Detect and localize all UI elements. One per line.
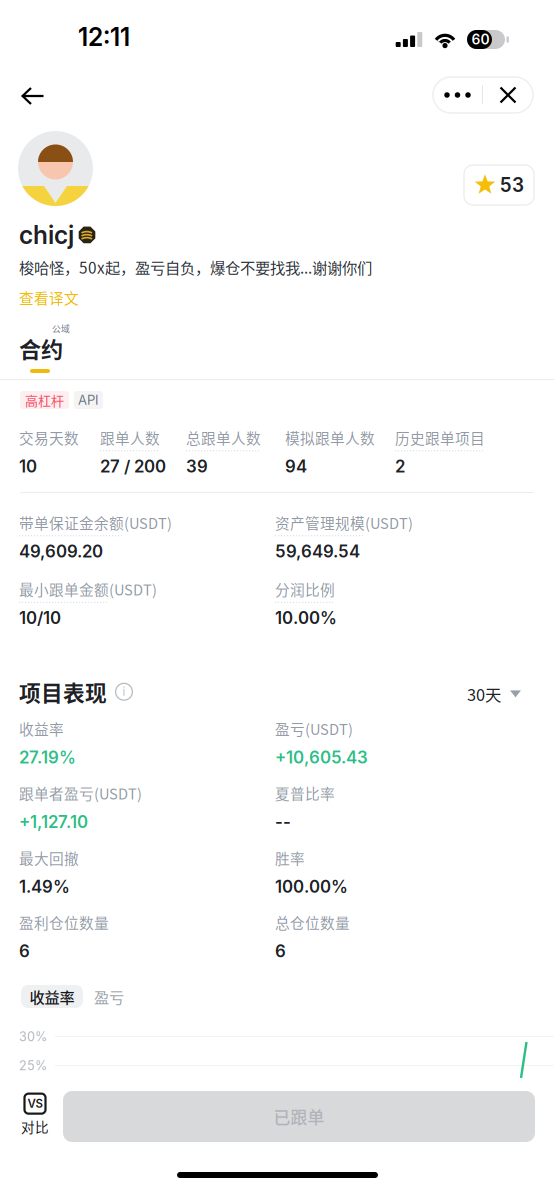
button[interactable]: Back bbox=[6, 74, 60, 118]
staticText: 收益率 bbox=[19, 718, 64, 739]
button[interactable]: 已跟单 bbox=[63, 1091, 535, 1142]
button[interactable]: More bbox=[433, 77, 482, 113]
staticText: 12:11 bbox=[78, 22, 130, 52]
staticText: 最小跟单金额(USDT) bbox=[19, 579, 157, 600]
staticText: 梭哈怪，50x起，盈亏自负，爆仓不要找我...谢谢你们 bbox=[19, 256, 372, 278]
staticText: 历史跟单项目 bbox=[395, 427, 485, 448]
staticText: 10/10 bbox=[19, 608, 61, 628]
staticText: 已跟单 bbox=[273, 1104, 324, 1129]
staticText: 收益率 bbox=[29, 985, 74, 1007]
staticText: 对比 bbox=[21, 1117, 49, 1136]
staticText: +1,127.10 bbox=[19, 812, 88, 832]
staticText: 30% bbox=[19, 1029, 47, 1044]
staticText: 10 bbox=[19, 456, 37, 476]
staticText: i bbox=[122, 685, 125, 699]
staticText: 27.19% bbox=[19, 747, 76, 767]
staticText: 59,649.54 bbox=[275, 541, 360, 561]
staticText: 1.49% bbox=[19, 876, 70, 897]
staticText: 模拟跟单人数 bbox=[285, 427, 375, 448]
staticText: 跟单者盈亏(USDT) bbox=[19, 783, 142, 804]
staticText: +10,605.43 bbox=[275, 747, 368, 767]
staticText: 6 bbox=[275, 941, 286, 961]
button[interactable]: 53 bbox=[464, 165, 534, 205]
staticText: 10.00% bbox=[275, 608, 337, 628]
staticText: -- bbox=[275, 812, 291, 832]
staticText: 高杠杆 bbox=[25, 390, 64, 409]
staticText: 100.00% bbox=[275, 876, 348, 897]
staticText: 项目表现 bbox=[19, 676, 107, 707]
button[interactable]: 收益率 bbox=[21, 985, 83, 1008]
staticText: 盈亏(USDT) bbox=[275, 718, 353, 739]
staticText: chicj bbox=[19, 220, 74, 250]
button[interactable]: VS bbox=[11, 1093, 59, 1137]
staticText: 胜率 bbox=[275, 847, 305, 868]
staticText: VS bbox=[27, 1097, 42, 1111]
staticText: 6 bbox=[19, 941, 30, 961]
staticText: 公域 bbox=[52, 322, 70, 335]
staticText: 总仓位数量 bbox=[275, 912, 350, 933]
staticText: 27 / 200 bbox=[100, 456, 166, 476]
staticText: 30天 bbox=[467, 682, 501, 706]
staticText: 查看译文 bbox=[19, 287, 79, 308]
staticText: 60 bbox=[471, 31, 489, 48]
staticText: 49,609.20 bbox=[19, 541, 103, 561]
button[interactable]: 盈亏 bbox=[85, 985, 133, 1008]
button[interactable]: Close bbox=[483, 77, 533, 113]
button[interactable]: 查看译文 bbox=[19, 284, 79, 311]
staticText: 跟单人数 bbox=[100, 427, 160, 448]
staticText: 分润比例 bbox=[275, 579, 335, 600]
staticText: 25% bbox=[19, 1058, 47, 1073]
staticText: 94 bbox=[285, 456, 307, 476]
staticText: 盈利仓位数量 bbox=[19, 912, 109, 933]
staticText: 盈亏 bbox=[94, 985, 124, 1007]
button[interactable]: 30天 bbox=[467, 678, 521, 710]
staticText: 交易天数 bbox=[19, 427, 79, 448]
staticText: 夏普比率 bbox=[275, 783, 335, 804]
staticText: 53 bbox=[500, 173, 524, 196]
button[interactable]: 公域 bbox=[19, 322, 89, 377]
staticText: API bbox=[78, 392, 99, 408]
staticText: 资产管理规模(USDT) bbox=[275, 512, 413, 533]
staticText: 2 bbox=[395, 456, 405, 476]
staticText: 最大回撤 bbox=[19, 847, 79, 868]
staticText: 合约 bbox=[19, 332, 63, 364]
staticText: 39 bbox=[186, 456, 208, 476]
staticText: 带单保证金余额(USDT) bbox=[19, 512, 172, 533]
staticText: 总跟单人数 bbox=[186, 427, 261, 448]
